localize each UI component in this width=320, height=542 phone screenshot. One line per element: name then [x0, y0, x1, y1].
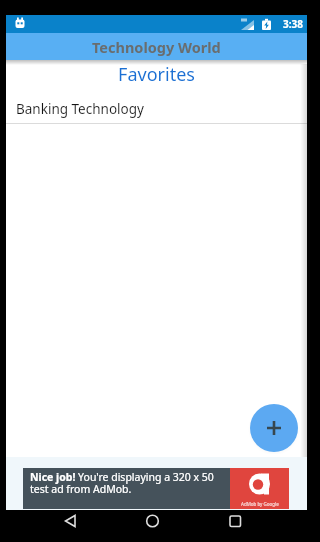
button[interactable]: [250, 404, 298, 452]
staticText: Nice job! You're displaying a 320 x 50: [30, 470, 214, 484]
staticText: Banking Technology: [16, 100, 144, 118]
staticText: Favorites: [6, 62, 307, 87]
staticText: Technology World: [92, 37, 221, 57]
staticText: 3:38: [283, 17, 303, 31]
button[interactable]: Banking Technology: [6, 96, 307, 122]
staticText: test ad from AdMob.: [30, 482, 132, 496]
button[interactable]: Nice job! You're displaying a 320 x 50: [23, 468, 289, 509]
staticText: AdMob by Google: [241, 501, 279, 507]
